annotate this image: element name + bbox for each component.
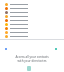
button[interactable] [0, 10, 64, 14]
button[interactable] [0, 14, 64, 18]
button[interactable] [0, 30, 64, 34]
button[interactable] [0, 26, 64, 30]
button[interactable] [0, 34, 64, 38]
button[interactable] [0, 6, 64, 10]
button[interactable] [0, 2, 64, 6]
button[interactable] [0, 18, 64, 22]
staticText: Access all your contacts with your direc… [0, 55, 64, 63]
button[interactable] [0, 22, 64, 26]
button[interactable]: Add [27, 66, 31, 71]
